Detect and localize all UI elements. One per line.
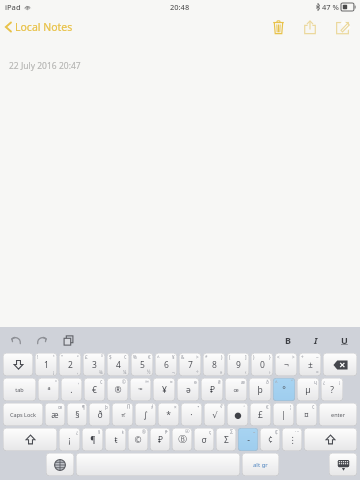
button[interactable]: ∛ — [204, 403, 225, 426]
staticText: ¥ — [172, 354, 175, 360]
button[interactable]: ∏ — [112, 403, 133, 426]
button[interactable]: ₱ — [150, 428, 170, 451]
button[interactable]: < — [275, 353, 297, 376]
button[interactable]: ð — [249, 378, 271, 401]
staticText: ¿ — [76, 429, 78, 435]
staticText: 20:48 — [170, 2, 190, 12]
button[interactable]: enter — [319, 403, 357, 426]
button[interactable] — [76, 453, 240, 476]
other: Hide keyboard — [329, 453, 357, 476]
staticText: . — [70, 384, 73, 396]
staticText: ® — [114, 384, 122, 396]
staticText: U — [341, 334, 348, 346]
staticText: ¬ — [172, 369, 175, 375]
button[interactable]: ⋯ — [282, 428, 302, 451]
button[interactable]: ¿ — [321, 378, 343, 401]
staticText: ¶ — [82, 404, 85, 410]
button[interactable]: U — [334, 330, 354, 350]
button[interactable]: Redo — [32, 330, 52, 350]
staticText: € — [148, 354, 151, 360]
button[interactable]: ℠ — [130, 378, 151, 401]
button[interactable]: alt gr — [242, 453, 279, 476]
button[interactable]: œ — [45, 403, 65, 426]
button[interactable]: Undo — [6, 330, 26, 350]
button[interactable]: " — [59, 353, 81, 376]
staticText: ‚ — [77, 369, 79, 375]
staticText: Σ — [224, 434, 229, 446]
button[interactable]: ∮ — [135, 403, 156, 426]
button[interactable]: ¤ — [153, 378, 175, 401]
button[interactable]: , — [61, 378, 82, 401]
staticText: ¶ — [90, 434, 96, 446]
button[interactable]: ° — [38, 378, 59, 401]
button[interactable]: Share — [299, 16, 321, 38]
button[interactable]: + — [299, 353, 321, 376]
button[interactable]: ŧ — [105, 428, 126, 451]
button[interactable]: Ⓐ — [172, 428, 192, 451]
button[interactable]: Change language — [46, 453, 74, 476]
button[interactable]: Delete — [267, 16, 289, 38]
button[interactable]: ς — [194, 428, 214, 451]
button[interactable]: B — [278, 330, 298, 350]
button[interactable]: – — [238, 428, 258, 451]
button[interactable]: Compose — [331, 16, 353, 38]
staticText: ^ — [275, 379, 278, 385]
staticText: ¢ — [268, 434, 273, 446]
staticText: ˘ — [291, 379, 293, 385]
button[interactable]: ¢ — [84, 378, 105, 401]
button[interactable]: Shift — [3, 353, 33, 376]
staticText: ₴ — [218, 379, 221, 385]
button[interactable]: ∑ — [216, 428, 236, 451]
button[interactable]: & — [179, 353, 201, 376]
button[interactable]: tab — [3, 378, 36, 401]
staticText: 47 % — [322, 2, 339, 12]
staticText: I — [314, 334, 318, 346]
button[interactable]: Local Notes — [5, 20, 73, 34]
button[interactable]: Hide keyboard — [329, 453, 357, 476]
button[interactable]: ¢ — [296, 403, 317, 426]
button[interactable]: ( — [227, 353, 249, 376]
staticText: tab — [15, 386, 24, 393]
button[interactable]: ₴ — [201, 378, 223, 401]
button[interactable]: ^ — [155, 353, 177, 376]
staticText: ) — [253, 354, 255, 360]
button[interactable]: × — [158, 403, 179, 426]
button[interactable]: ^ — [273, 378, 295, 401]
button[interactable]: Caps Lock — [3, 403, 43, 426]
button[interactable]: æ — [225, 378, 247, 401]
button[interactable]: Delete — [323, 353, 357, 376]
staticText: ● — [234, 410, 242, 420]
button[interactable]: ¦ — [273, 403, 294, 426]
button[interactable]: £ — [83, 353, 105, 376]
button[interactable]: % — [131, 353, 153, 376]
staticText: ] — [245, 354, 247, 360]
staticText: µ — [305, 384, 311, 396]
button[interactable]: Paste — [58, 330, 78, 350]
staticText: 6 — [164, 359, 169, 371]
staticText: ® — [142, 429, 146, 435]
staticText: € — [92, 384, 97, 396]
staticText: ~ — [316, 354, 319, 360]
button[interactable]: ! — [35, 353, 57, 376]
button[interactable]: I — [306, 330, 326, 350]
button[interactable]: $ — [107, 353, 129, 376]
button[interactable]: € — [250, 403, 271, 426]
button[interactable]: Shift — [3, 428, 57, 451]
button[interactable]: © — [107, 378, 128, 401]
button[interactable]: ∙ — [181, 403, 202, 426]
button[interactable]: ¶ — [67, 403, 87, 426]
button[interactable]: ɵ — [177, 378, 199, 401]
staticText: ɥ — [314, 379, 317, 385]
button[interactable]: þ — [89, 403, 110, 426]
button[interactable]: ₵ — [260, 428, 280, 451]
staticText: 0 — [260, 359, 265, 371]
button[interactable]: ◦ — [227, 403, 248, 426]
button[interactable]: ) — [251, 353, 273, 376]
button[interactable]: ¿ — [59, 428, 80, 451]
button[interactable]: § — [82, 428, 103, 451]
staticText: ½ — [147, 369, 151, 375]
button[interactable]: Shift — [304, 428, 357, 451]
button[interactable]: * — [203, 353, 225, 376]
button[interactable]: ɥ — [297, 378, 319, 401]
button[interactable]: ® — [128, 428, 148, 451]
